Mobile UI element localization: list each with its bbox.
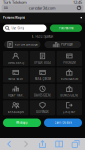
staticText: GENEL BAKIŞ [8, 61, 24, 64]
staticText: PARA ÇEKİM [34, 77, 50, 81]
staticText: Canlı Destek [54, 121, 71, 124]
button[interactable]: Üye Girişi [3, 24, 46, 32]
staticText: PersonelKapisi [3, 16, 25, 19]
staticText: Whatsapp [16, 121, 28, 124]
staticText: ÜYELİK BİLGİ [34, 61, 51, 64]
button[interactable]: Canlı Destek [44, 118, 82, 127]
button[interactable]: Bookmarks [51, 140, 67, 148]
staticText: caredar3d.com [29, 5, 56, 11]
button[interactable]: Share [34, 139, 51, 148]
staticText: GÜVENLİK [36, 110, 49, 114]
button[interactable]: Tabs [67, 139, 84, 148]
staticText: POPÜLER [61, 43, 73, 46]
staticText: AA [4, 6, 8, 10]
staticText: ÇIKIŞ YAP [63, 110, 76, 114]
button[interactable]: GÜVENLİK [30, 100, 55, 115]
button[interactable]: Whatsapp [3, 118, 41, 127]
button[interactable]: Back [1, 140, 18, 148]
button[interactable]: ÇIKIŞ YAP [57, 100, 82, 115]
button[interactable]: KUPON SORGULA [4, 41, 40, 48]
staticText: Para Yatırma [59, 26, 73, 30]
staticText: 12:45 [73, 0, 82, 5]
button[interactable]: Forward [18, 140, 34, 148]
button[interactable]: POPÜLER [44, 41, 81, 48]
button[interactable]: ÜYELİK BİLGİ [30, 51, 55, 66]
button[interactable]: BONUSLARIM [57, 67, 82, 82]
staticText: PARA YATIR [8, 77, 23, 81]
staticText: ARKADAŞIN [8, 110, 24, 114]
staticText: Üye Girişi [11, 26, 24, 30]
button[interactable]: PARA ÇEKİM [30, 67, 55, 82]
button[interactable]: HESAP HAR. [3, 84, 28, 99]
staticText: HESAP HAR. [8, 94, 24, 97]
staticText: KUPON SORGULA [15, 43, 38, 46]
staticText: Türk Telekom [3, 0, 27, 5]
button[interactable]: ARKADAŞIN [3, 100, 28, 115]
staticText: BONUS GEÇM. [60, 94, 78, 97]
button[interactable]: Para Yatırma [50, 24, 82, 32]
button[interactable]: PARA YATIR [3, 67, 28, 82]
staticText: BAHİS GEÇM. [34, 94, 51, 97]
staticText: A. HIZLI İŞLEMLER [31, 35, 53, 38]
staticText: PROFİLİM [63, 61, 75, 64]
button[interactable]: BONUS GEÇM. [57, 84, 82, 99]
staticText: BONUSLARIM [61, 77, 78, 81]
button[interactable]: BAHİS GEÇM. [30, 84, 55, 99]
button[interactable]: PROFİLİM [57, 51, 82, 66]
button[interactable]: GENEL BAKIŞ [3, 51, 28, 66]
